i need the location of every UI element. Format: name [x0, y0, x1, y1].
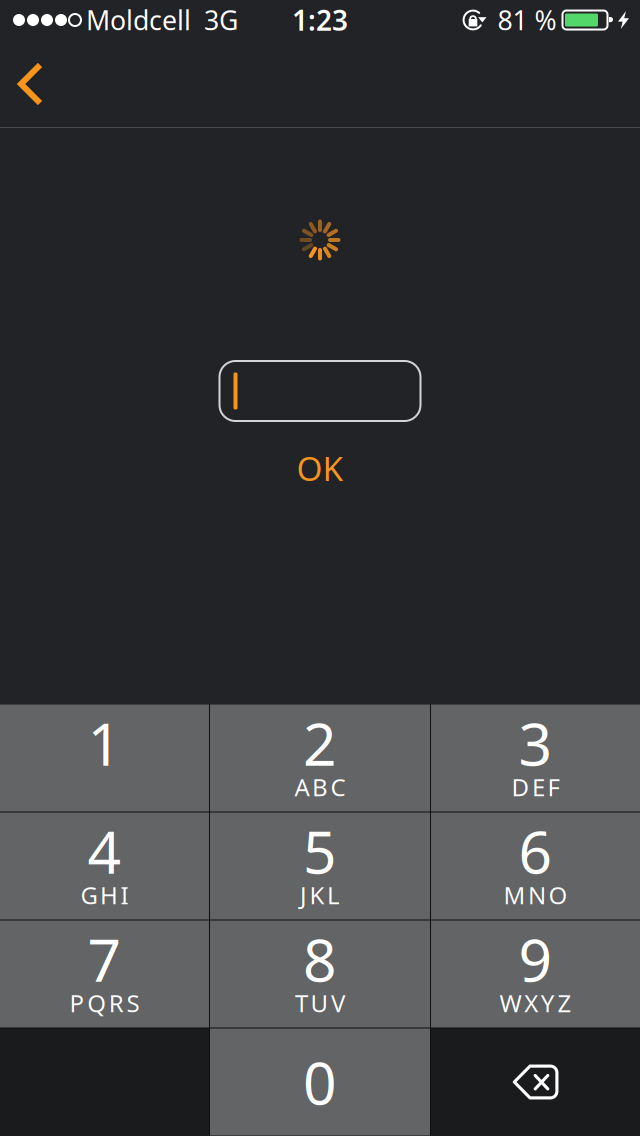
- button[interactable]: 8: [210, 920, 430, 1027]
- button[interactable]: 1: [0, 704, 209, 811]
- staticText: 1: [87, 704, 121, 782]
- button[interactable]: 3: [431, 704, 640, 811]
- staticText: 4: [87, 812, 121, 890]
- button[interactable]: 9: [431, 920, 640, 1027]
- staticText: 7: [87, 920, 121, 998]
- button[interactable]: 2: [210, 704, 430, 811]
- staticText: Moldcell: [86, 2, 191, 38]
- staticText: 9: [518, 920, 552, 998]
- staticText: JKL: [300, 879, 340, 911]
- button[interactable]: 6: [431, 812, 640, 919]
- button[interactable]: 5: [210, 812, 430, 919]
- button[interactable]: Delete: [431, 1028, 640, 1135]
- staticText: 3G: [204, 2, 238, 38]
- staticText: 6: [518, 812, 552, 890]
- button[interactable]: 7: [0, 920, 209, 1027]
- button[interactable]: Back: [0, 40, 70, 128]
- staticText: 0: [303, 1043, 337, 1121]
- staticText: OK: [296, 446, 343, 490]
- staticText: 1:23: [292, 1, 348, 39]
- staticText: PQRS: [70, 987, 139, 1019]
- button[interactable]: OK: [280, 440, 359, 496]
- button[interactable]: 0: [210, 1028, 430, 1135]
- staticText: DEF: [511, 771, 560, 803]
- staticText: 3: [518, 704, 552, 782]
- staticText: TUV: [295, 987, 345, 1019]
- staticText: 5: [303, 812, 337, 890]
- staticText: 2: [303, 704, 337, 782]
- staticText: ABC: [294, 771, 346, 803]
- staticText: GHI: [80, 879, 129, 911]
- staticText: 81 %: [497, 2, 556, 38]
- staticText: WXYZ: [500, 987, 571, 1019]
- button[interactable]: 4: [0, 812, 209, 919]
- staticText: 8: [303, 920, 337, 998]
- staticText: MNO: [503, 879, 568, 911]
